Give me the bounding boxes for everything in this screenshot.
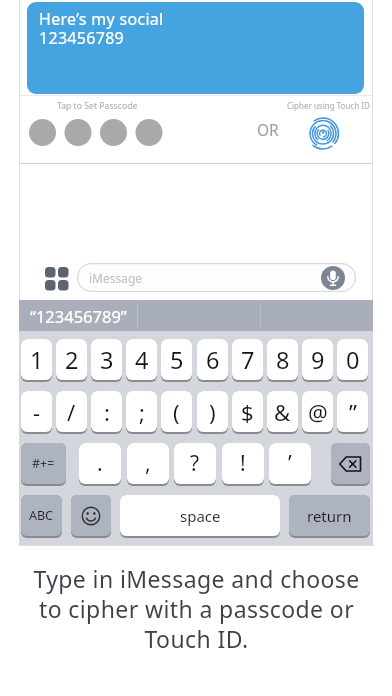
staticText: iMessage bbox=[89, 270, 143, 286]
staticText: 3 bbox=[100, 344, 114, 376]
staticText: 1 bbox=[30, 344, 44, 376]
staticText: ) bbox=[209, 397, 216, 427]
button[interactable] bbox=[45, 267, 69, 291]
staticText: ! bbox=[240, 449, 246, 478]
button[interactable]: ABC bbox=[21, 495, 62, 538]
button[interactable]: ( bbox=[161, 391, 192, 434]
button[interactable]: ? bbox=[174, 443, 216, 486]
button[interactable] bbox=[331, 443, 370, 486]
staticText: / bbox=[67, 397, 76, 427]
staticText: : bbox=[104, 397, 110, 427]
button[interactable]: 5 bbox=[161, 339, 192, 382]
staticText: OR bbox=[257, 119, 279, 140]
button[interactable]: / bbox=[56, 391, 87, 434]
button[interactable]: 3 bbox=[91, 339, 122, 382]
staticText: ABC bbox=[29, 507, 54, 524]
button[interactable]: 7 bbox=[232, 339, 263, 382]
staticText: Tap to Set Passcode bbox=[57, 100, 138, 112]
staticText: ’ bbox=[288, 449, 292, 478]
button[interactable]: iMessage bbox=[77, 263, 356, 292]
button[interactable] bbox=[306, 117, 340, 150]
staticText: 2 bbox=[65, 344, 79, 376]
button[interactable]: Here’s my social 123456789 bbox=[27, 2, 364, 94]
button[interactable]: 6 bbox=[197, 339, 228, 382]
button[interactable]: ; bbox=[126, 391, 157, 434]
button[interactable]: $ bbox=[232, 391, 263, 434]
staticText: #+= bbox=[32, 455, 55, 472]
button[interactable]: 8 bbox=[267, 339, 298, 382]
button[interactable]: 0 bbox=[337, 339, 368, 382]
staticText: & bbox=[274, 397, 291, 427]
staticText: 0 bbox=[346, 344, 360, 376]
staticText: , bbox=[145, 449, 151, 478]
staticText: 7 bbox=[241, 344, 255, 376]
staticText: 9 bbox=[311, 344, 325, 376]
staticText: ? bbox=[190, 449, 200, 478]
staticText: Cipher using Touch ID bbox=[287, 100, 370, 111]
button[interactable]: : bbox=[91, 391, 122, 434]
staticText: “123456789” bbox=[30, 305, 127, 327]
staticText: Here’s my social 123456789 bbox=[39, 8, 164, 48]
staticText: - bbox=[33, 397, 41, 427]
button[interactable]: ! bbox=[222, 443, 264, 486]
button[interactable]: space bbox=[120, 495, 280, 538]
staticText: space bbox=[180, 506, 221, 526]
staticText: return bbox=[307, 506, 352, 526]
button[interactable] bbox=[71, 495, 111, 538]
button[interactable]: ’ bbox=[269, 443, 311, 486]
staticText: @ bbox=[308, 397, 328, 427]
staticText: 4 bbox=[135, 344, 149, 376]
button[interactable]: return bbox=[289, 495, 370, 538]
button[interactable]: & bbox=[267, 391, 298, 434]
button[interactable]: 2 bbox=[56, 339, 87, 382]
staticText: $ bbox=[241, 397, 254, 427]
button[interactable]: . bbox=[79, 443, 121, 486]
staticText: . bbox=[97, 449, 103, 478]
staticText: 5 bbox=[170, 344, 184, 376]
staticText: 8 bbox=[276, 344, 290, 376]
button[interactable]: ” bbox=[337, 391, 368, 434]
button[interactable]: , bbox=[127, 443, 169, 486]
staticText: ; bbox=[139, 397, 145, 427]
staticText: Type in iMessage and choose to cipher wi… bbox=[33, 563, 360, 654]
button[interactable]: 9 bbox=[302, 339, 333, 382]
staticText: ” bbox=[349, 397, 357, 427]
staticText: 6 bbox=[206, 344, 220, 376]
button[interactable]: 4 bbox=[126, 339, 157, 382]
button[interactable]: ) bbox=[197, 391, 228, 434]
button[interactable]: #+= bbox=[21, 443, 66, 486]
button[interactable]: - bbox=[21, 391, 52, 434]
button[interactable]: @ bbox=[302, 391, 333, 434]
button[interactable]: 1 bbox=[21, 339, 52, 382]
staticText: ( bbox=[173, 397, 180, 427]
